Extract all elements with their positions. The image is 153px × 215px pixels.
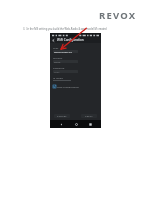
staticText: WPA2 [54,60,61,63]
staticText: WiFi Configuration [57,38,84,42]
staticText: IP mode [53,76,63,79]
staticText: Security [53,56,63,59]
button[interactable]: Back [52,39,55,42]
staticText: CANCEL [57,115,67,118]
staticText: •••••• [54,70,60,73]
button[interactable]: Recent apps [86,120,94,128]
staticText: APPLY [85,115,93,118]
button[interactable]: Home [72,120,80,128]
button[interactable]: Back [50,37,101,43]
button[interactable]: CANCEL [54,114,70,118]
staticText: REVOX [99,9,137,22]
button[interactable]: Security [53,56,98,63]
staticText: Password [53,66,65,69]
staticText: Save configuration [57,85,79,88]
button[interactable]: Save configuration [53,85,98,88]
staticText: 3. In the MS setting you build the Web-R… [23,27,107,31]
staticText: Revox-Guest-2G [54,50,72,53]
button[interactable]: Password [53,66,98,73]
button[interactable]: APPLY [81,114,97,118]
button[interactable]: Back [57,120,65,128]
staticText: SSID [53,46,59,49]
button[interactable]: IP mode [53,76,98,81]
button[interactable]: SSID [53,46,98,53]
